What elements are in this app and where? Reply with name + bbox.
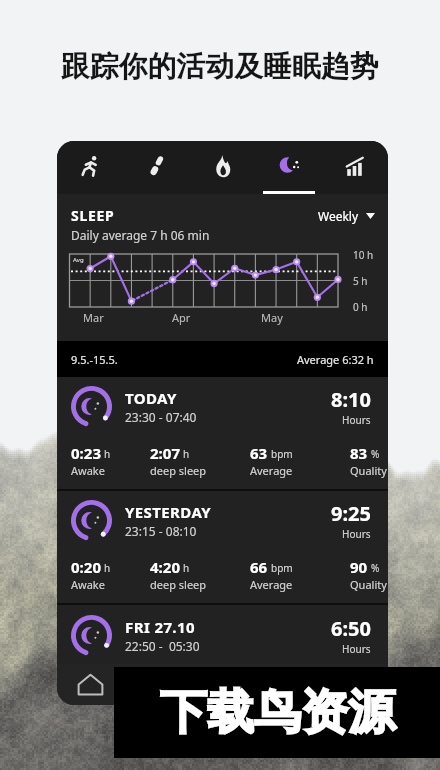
staticText: Hours <box>342 413 371 427</box>
staticText: 6:50 <box>331 615 371 642</box>
staticText: 0:23 <box>71 443 101 463</box>
staticText: 9.5.-15.5. <box>71 352 118 367</box>
staticText: h <box>104 561 111 575</box>
staticText: May <box>261 310 283 325</box>
button[interactable]: Sleep <box>256 141 322 194</box>
staticText: Weekly <box>318 208 359 224</box>
staticText: % <box>371 561 380 575</box>
staticText: h <box>104 447 111 461</box>
staticText: bpm <box>271 561 293 575</box>
staticText: 2:07 <box>150 443 180 463</box>
button[interactable]: Weekly <box>318 206 375 224</box>
staticText: Awake <box>71 577 105 592</box>
button[interactable]: YESTERDAY <box>57 491 388 603</box>
staticText: Quality <box>350 463 387 478</box>
staticText: Apr <box>172 310 191 325</box>
button[interactable]: TODAY <box>57 377 388 489</box>
staticText: FRI 27.10 <box>125 617 195 637</box>
staticText: Hours <box>342 642 371 656</box>
staticText: 0:20 <box>71 557 101 577</box>
staticText: Average <box>250 463 293 478</box>
staticText: TODAY <box>125 388 177 408</box>
staticText: Mar <box>83 310 104 325</box>
button[interactable]: Trends <box>322 141 388 194</box>
staticText: bpm <box>271 447 293 461</box>
staticText: 8:10 <box>331 386 371 413</box>
staticText: 83 <box>350 443 368 463</box>
staticText: 10 h <box>353 248 374 262</box>
staticText: 跟踪你的活动及睡眠趋势 <box>61 49 379 85</box>
staticText: Daily average 7 h 06 min <box>71 227 210 243</box>
staticText: Awake <box>71 463 105 478</box>
staticText: 66 <box>250 557 268 577</box>
button[interactable]: Calories <box>190 141 256 194</box>
staticText: 22:50 - 05:30 <box>125 638 200 654</box>
staticText: Hours <box>342 527 371 541</box>
staticText: 63 <box>250 443 268 463</box>
button[interactable]: Home <box>65 664 115 705</box>
staticText: 下载鸟资源 <box>160 683 395 742</box>
button[interactable]: FRI 27.10 <box>57 605 388 664</box>
staticText: SLEEP <box>71 206 115 225</box>
staticText: h <box>183 561 190 575</box>
staticText: YESTERDAY <box>125 502 212 522</box>
staticText: 5 h <box>353 274 368 288</box>
staticText: deep sleep <box>150 577 207 592</box>
button[interactable]: Steps <box>124 141 190 194</box>
staticText: 23:15 - 08:10 <box>125 523 197 539</box>
staticText: 4:20 <box>150 557 180 577</box>
staticText: % <box>371 447 380 461</box>
staticText: Avg <box>73 256 84 264</box>
staticText: 23:30 - 07:40 <box>125 409 197 425</box>
staticText: Quality <box>350 577 387 592</box>
staticText: 0 h <box>353 300 368 314</box>
staticText: Average <box>250 577 293 592</box>
button[interactable]: Activity <box>57 141 124 194</box>
staticText: h <box>183 447 190 461</box>
staticText: 9:25 <box>331 500 371 527</box>
staticText: 90 <box>350 557 368 577</box>
staticText: deep sleep <box>150 463 207 478</box>
staticText: Average 6:32 h <box>297 352 374 367</box>
